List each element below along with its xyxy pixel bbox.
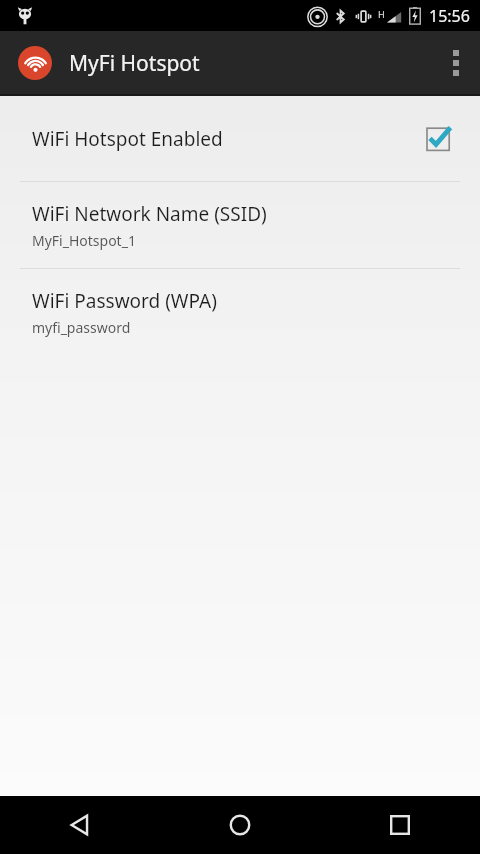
staticText: myfi_password [32, 318, 131, 337]
staticText: MyFi_Hotspot_1 [32, 231, 136, 250]
button[interactable]: WiFi Hotspot Enabled [0, 96, 480, 181]
staticText: 15:56 [429, 5, 470, 27]
button[interactable]: WiFi Network Name (SSID) [0, 182, 480, 268]
staticText: MyFi Hotspot [69, 49, 200, 78]
button[interactable]: Back [0, 796, 160, 854]
staticText: WiFi Network Name (SSID) [32, 201, 267, 227]
button[interactable]: More options [432, 31, 480, 94]
button[interactable]: Recent apps [320, 796, 480, 854]
button[interactable]: Home [160, 796, 320, 854]
button[interactable]: WiFi Password (WPA) [0, 269, 480, 355]
staticText: WiFi Password (WPA) [32, 288, 217, 314]
staticText: H [378, 8, 385, 20]
staticText: WiFi Hotspot Enabled [32, 126, 424, 152]
